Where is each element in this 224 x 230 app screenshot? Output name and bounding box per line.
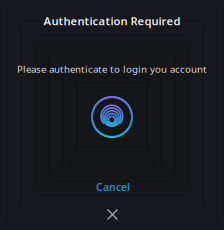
button[interactable]: Close <box>0 0 224 230</box>
staticText: Cancel <box>96 180 130 194</box>
button[interactable]: Cancel <box>96 180 130 194</box>
staticText: Please authenticate to login you account <box>17 62 207 76</box>
staticText: Authentication Required <box>43 13 180 29</box>
